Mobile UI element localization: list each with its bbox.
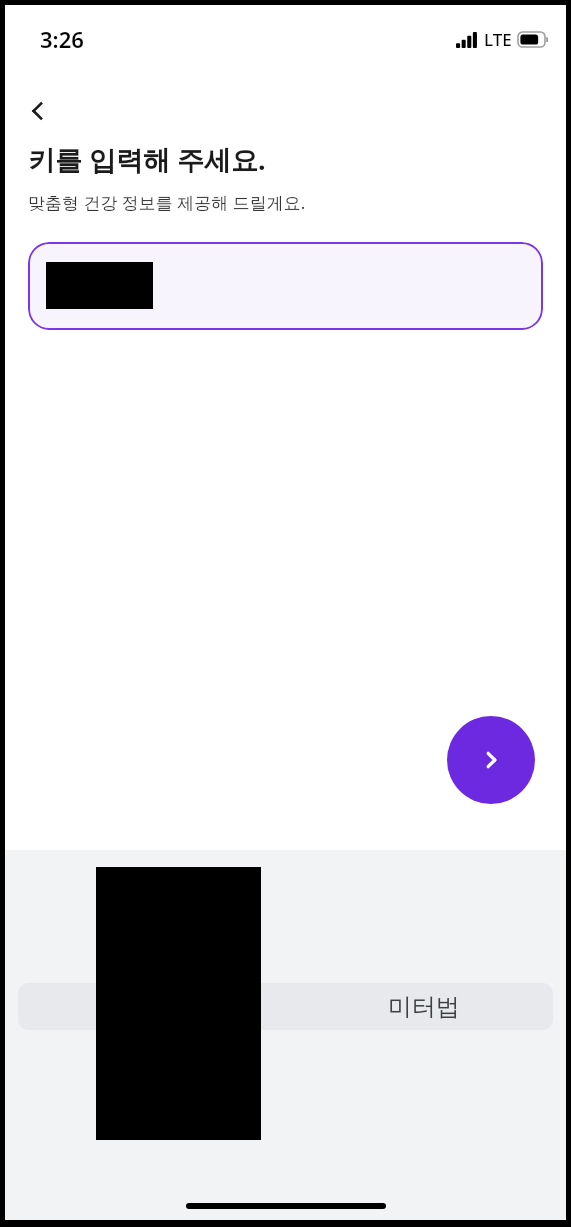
staticText: 맞춤형 건강 정보를 제공해 드릴게요. — [28, 191, 306, 214]
button[interactable]: Next — [447, 716, 535, 804]
button[interactable] — [28, 242, 543, 330]
button[interactable]: 미터법 — [18, 983, 553, 1030]
staticText: 키를 입력해 주세요. — [28, 141, 266, 178]
staticText: LTE — [484, 28, 512, 51]
button[interactable]: Back — [16, 89, 60, 133]
staticText: 3:26 — [40, 24, 84, 54]
staticText: 미터법 — [388, 992, 460, 1022]
